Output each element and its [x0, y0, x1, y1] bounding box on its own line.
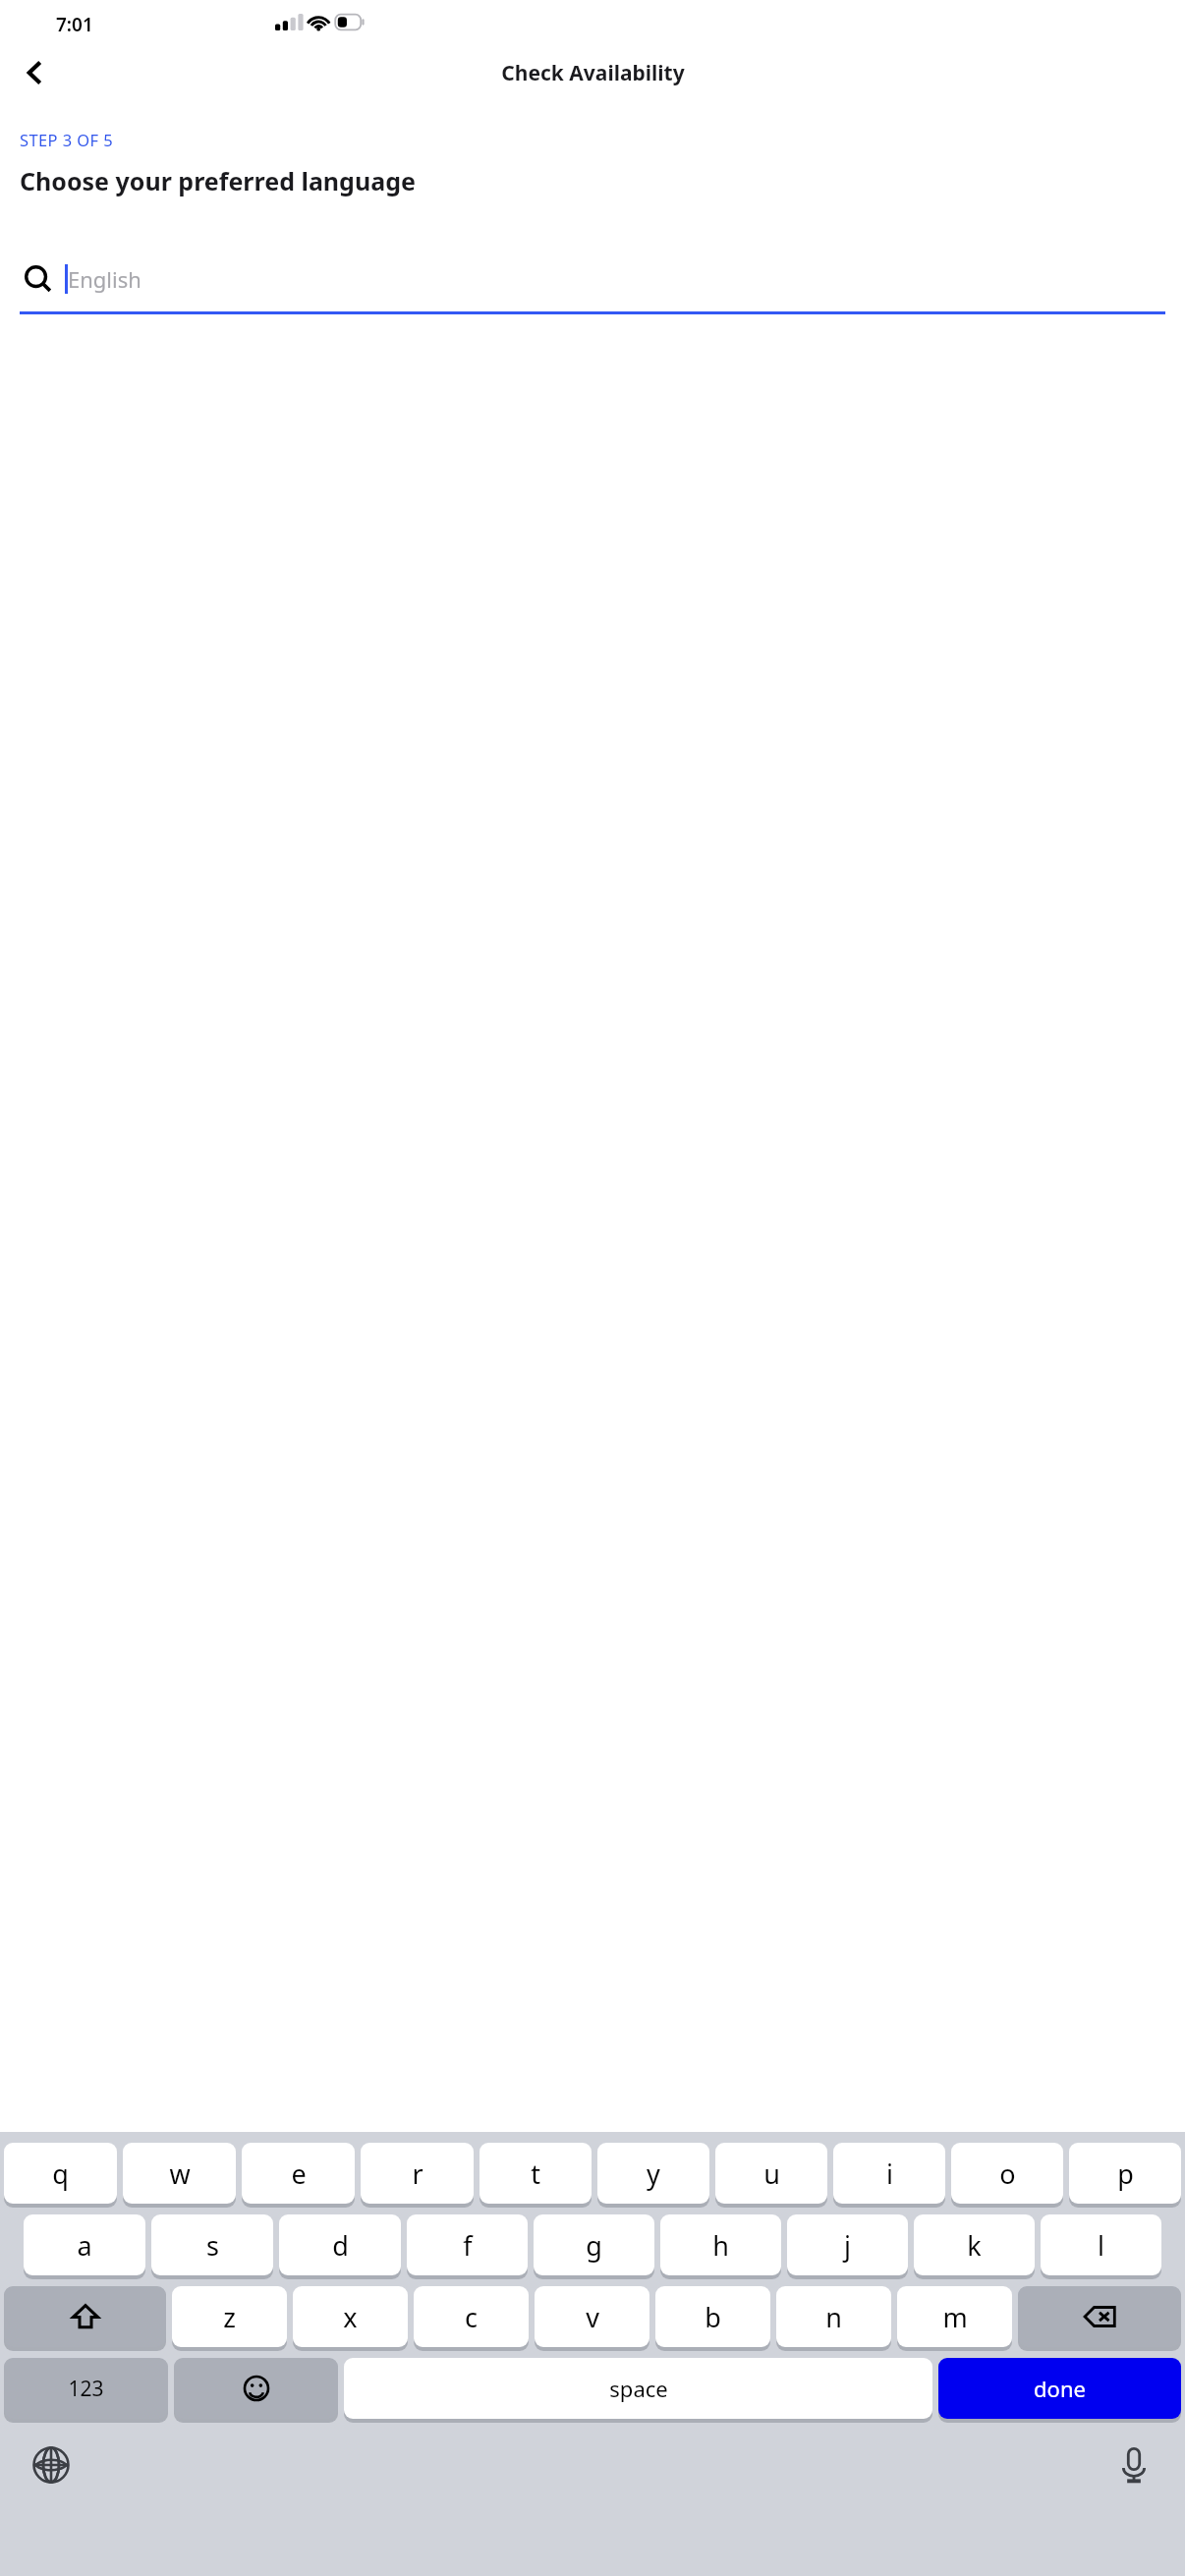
staticText: Choose your preferred language — [20, 164, 416, 197]
staticText: 123 — [68, 2375, 104, 2403]
staticText: w — [169, 2156, 191, 2192]
button[interactable]: a — [24, 2214, 145, 2275]
staticText: English — [68, 264, 141, 294]
button[interactable]: q — [4, 2143, 117, 2204]
staticText: h — [712, 2227, 729, 2264]
staticText: n — [825, 2299, 842, 2335]
staticText: t — [531, 2156, 540, 2192]
button[interactable]: Search — [20, 252, 1165, 314]
staticText: b — [705, 2299, 721, 2335]
button[interactable]: Voice input — [1104, 2436, 1163, 2494]
button[interactable]: e — [242, 2143, 355, 2204]
button[interactable]: w — [123, 2143, 236, 2204]
staticText: z — [223, 2299, 236, 2335]
staticText: y — [647, 2156, 660, 2192]
button[interactable]: m — [897, 2286, 1012, 2347]
staticText: j — [844, 2227, 851, 2264]
staticText: d — [332, 2227, 349, 2264]
button[interactable]: o — [951, 2143, 1063, 2204]
button[interactable]: f — [407, 2214, 528, 2275]
button[interactable]: c — [414, 2286, 529, 2347]
button[interactable]: r — [361, 2143, 474, 2204]
staticText: u — [763, 2156, 780, 2192]
button[interactable]: s — [151, 2214, 273, 2275]
staticText: done — [1034, 2374, 1086, 2403]
button[interactable]: l — [1041, 2214, 1161, 2275]
staticText: r — [412, 2156, 423, 2192]
button[interactable]: h — [660, 2214, 781, 2275]
button[interactable]: v — [535, 2286, 649, 2347]
staticText: v — [586, 2299, 599, 2335]
button[interactable]: n — [776, 2286, 891, 2347]
button[interactable]: Delete — [1018, 2286, 1181, 2347]
button[interactable]: u — [715, 2143, 827, 2204]
staticText: Check Availability — [501, 59, 685, 87]
button[interactable]: i — [833, 2143, 945, 2204]
button[interactable]: t — [480, 2143, 592, 2204]
staticText: k — [967, 2227, 982, 2264]
button[interactable]: y — [597, 2143, 709, 2204]
button[interactable]: 123 — [4, 2358, 168, 2419]
staticText: c — [465, 2299, 478, 2335]
button[interactable]: Emoji — [174, 2358, 338, 2419]
button[interactable]: p — [1069, 2143, 1181, 2204]
staticText: p — [1117, 2156, 1134, 2192]
button[interactable]: z — [172, 2286, 287, 2347]
staticText: l — [1098, 2227, 1104, 2264]
staticText: s — [206, 2227, 219, 2264]
button[interactable]: b — [655, 2286, 770, 2347]
staticText: m — [942, 2299, 968, 2335]
button[interactable]: done — [938, 2358, 1181, 2419]
button[interactable]: Change keyboard language — [22, 2436, 81, 2494]
button[interactable]: j — [787, 2214, 908, 2275]
button[interactable]: d — [279, 2214, 401, 2275]
staticText: a — [77, 2227, 92, 2264]
staticText: o — [999, 2156, 1016, 2192]
staticText: q — [52, 2156, 69, 2192]
staticText: f — [463, 2227, 473, 2264]
button[interactable]: space — [344, 2358, 932, 2419]
button[interactable]: Shift — [4, 2286, 166, 2347]
staticText: space — [609, 2374, 668, 2403]
other: Search — [24, 264, 53, 294]
staticText: e — [291, 2156, 307, 2192]
staticText: g — [586, 2227, 602, 2264]
staticText: x — [343, 2299, 358, 2335]
button[interactable]: Back — [8, 45, 63, 100]
button[interactable]: x — [293, 2286, 408, 2347]
staticText: 7:01 — [56, 12, 93, 37]
staticText: STEP 3 OF 5 — [20, 129, 113, 150]
button[interactable]: g — [534, 2214, 654, 2275]
staticText: i — [886, 2156, 893, 2192]
button[interactable]: k — [914, 2214, 1035, 2275]
